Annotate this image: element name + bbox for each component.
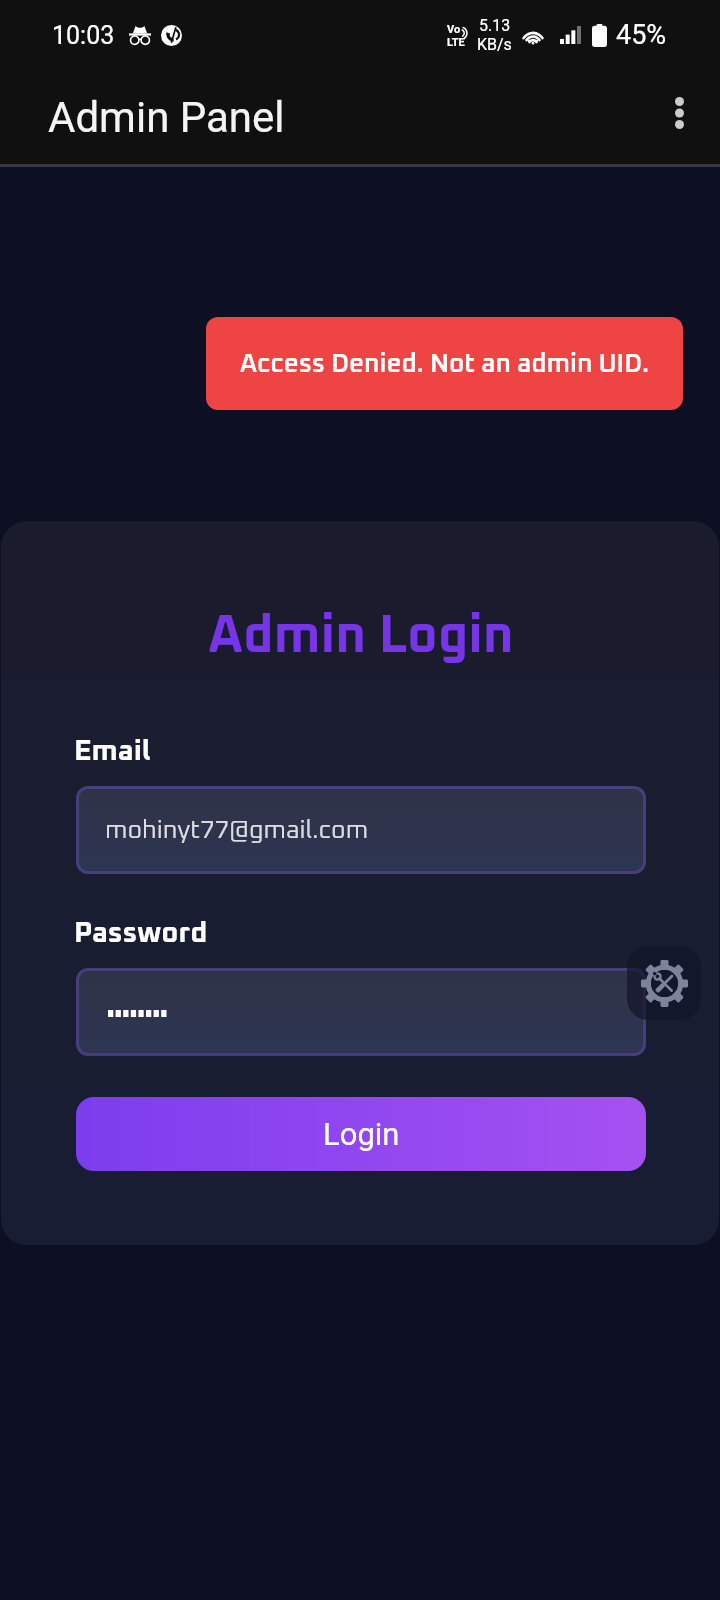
staticText: 45%	[616, 19, 667, 51]
button[interactable]: More options	[648, 86, 710, 148]
button[interactable]: Access Denied. Not an admin UID.	[206, 317, 683, 410]
staticText: Access Denied. Not an admin UID.	[240, 351, 650, 377]
button[interactable]: Login	[76, 1097, 646, 1171]
staticText: KB/s	[477, 35, 512, 54]
staticText: Password	[74, 919, 208, 948]
button[interactable]: Developer tools	[627, 946, 701, 1020]
staticText: Admin Panel	[48, 93, 285, 142]
staticText: 5.13	[479, 16, 511, 35]
staticText: Vo	[447, 23, 461, 36]
button[interactable]: mohinyt77@gmail.com	[76, 786, 646, 874]
staticText: Admin Login	[76, 611, 646, 663]
staticText: mohinyt77@gmail.com	[105, 818, 369, 843]
button[interactable]	[76, 968, 646, 1056]
staticText: 10:03	[52, 21, 115, 50]
staticText: LTE	[447, 36, 465, 47]
staticText: Login	[323, 1116, 400, 1152]
staticText: Email	[74, 737, 151, 766]
